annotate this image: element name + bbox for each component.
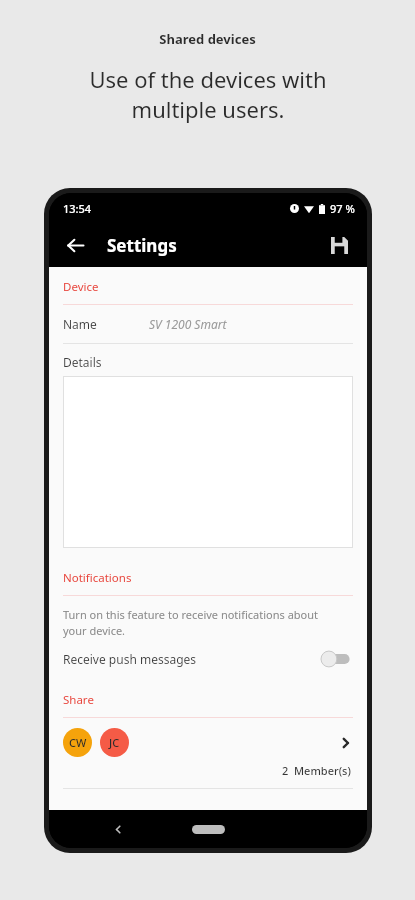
button[interactable]: Name	[49, 305, 367, 343]
button[interactable]: Back	[105, 816, 131, 842]
staticText: JC	[109, 735, 120, 750]
staticText: 13:54	[63, 201, 92, 216]
staticText: CW	[69, 735, 87, 750]
other: Open members	[339, 736, 353, 750]
staticText: Use of the devices with multiple users.	[89, 64, 327, 124]
staticText: 2 Member(s)	[282, 763, 351, 778]
button[interactable]: JC	[100, 728, 129, 757]
staticText: Name	[63, 316, 97, 332]
button[interactable]: CW	[49, 718, 367, 789]
staticText: Notifications	[63, 570, 132, 586]
staticText: Settings	[107, 234, 177, 257]
staticText: 97 %	[330, 201, 355, 216]
staticText: SV 1200 Smart	[149, 316, 227, 332]
staticText: Turn on this feature to receive notifica…	[63, 607, 343, 638]
button[interactable]: Save	[321, 227, 357, 263]
staticText: Shared devices	[159, 30, 256, 48]
button[interactable]	[63, 376, 353, 548]
button[interactable]: Back	[57, 227, 93, 263]
staticText: Receive push messages	[63, 651, 197, 667]
staticText: Details	[63, 354, 102, 370]
staticText: Share	[63, 692, 94, 708]
button[interactable]: Receive push messages	[49, 638, 367, 680]
button[interactable]: CW	[63, 728, 92, 757]
staticText: Device	[63, 279, 99, 295]
button[interactable]: Home	[192, 825, 225, 834]
